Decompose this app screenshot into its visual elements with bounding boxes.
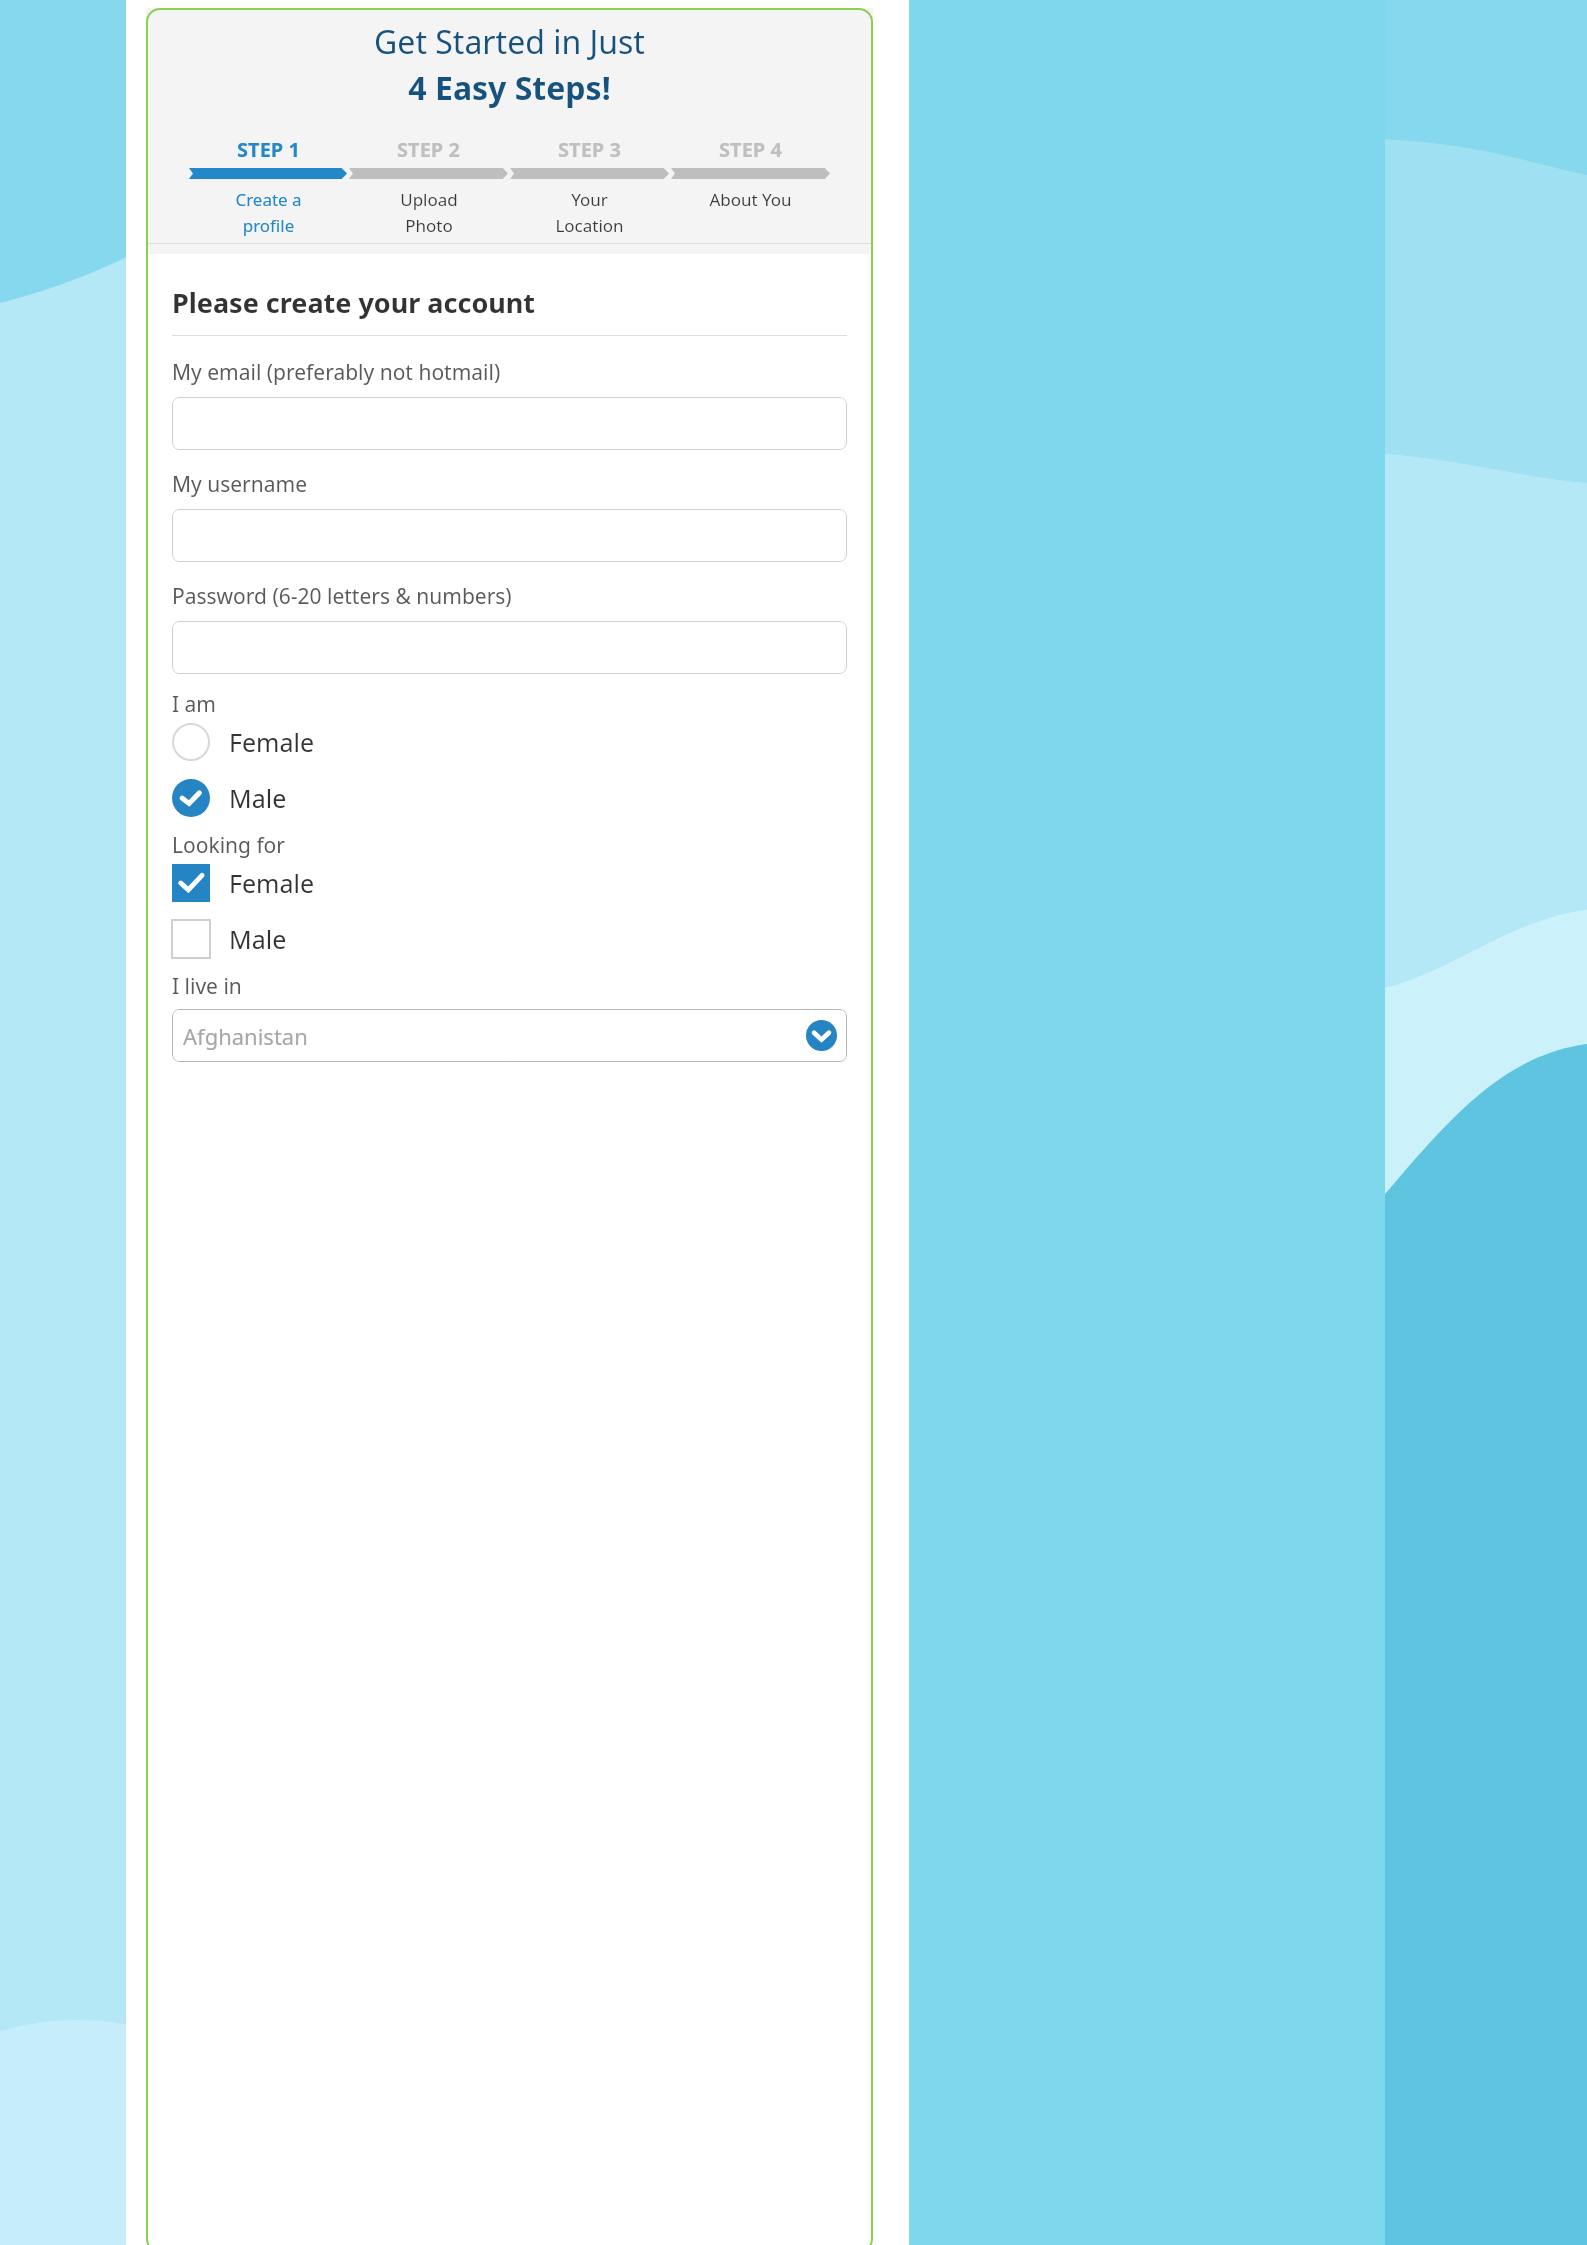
staticText: Your Location	[555, 188, 624, 237]
button[interactable]	[172, 621, 847, 674]
staticText: 4 Easy Steps!	[146, 66, 873, 110]
other: Open country list	[806, 1020, 837, 1051]
staticText: Upload Photo	[400, 188, 458, 237]
staticText: Create a profile	[235, 188, 302, 237]
staticText: Password (6-20 letters & numbers)	[172, 582, 512, 611]
staticText: Please create your account	[172, 284, 536, 321]
staticText: Male	[229, 922, 287, 956]
button[interactable]: STEP 4	[670, 136, 831, 211]
staticText: STEP 4	[719, 136, 782, 163]
staticText: My username	[172, 470, 308, 499]
staticText: Get Started in Just	[146, 20, 873, 64]
staticText: STEP 1	[237, 136, 300, 163]
staticText: STEP 3	[558, 136, 621, 163]
button[interactable]: Male	[172, 779, 847, 817]
button[interactable]: Afghanistan	[172, 1009, 847, 1062]
staticText: I am	[172, 690, 216, 719]
staticText: I live in	[172, 972, 242, 1001]
button[interactable]: STEP 2	[348, 136, 509, 237]
staticText: Female	[229, 725, 315, 759]
button[interactable]: STEP 3	[509, 136, 670, 237]
staticText: About You	[709, 188, 792, 211]
button[interactable]: Female	[172, 864, 847, 902]
button[interactable]	[172, 509, 847, 562]
staticText: Afghanistan	[183, 1021, 308, 1051]
staticText: STEP 2	[397, 136, 460, 163]
button[interactable]: STEP 1	[188, 136, 348, 237]
button[interactable]: Female	[172, 723, 847, 761]
staticText: My email (preferably not hotmail)	[172, 358, 501, 387]
button[interactable]: Male	[172, 920, 847, 958]
staticText: Looking for	[172, 831, 286, 860]
button[interactable]	[172, 397, 847, 450]
staticText: Female	[229, 866, 315, 900]
staticText: Male	[229, 781, 287, 815]
